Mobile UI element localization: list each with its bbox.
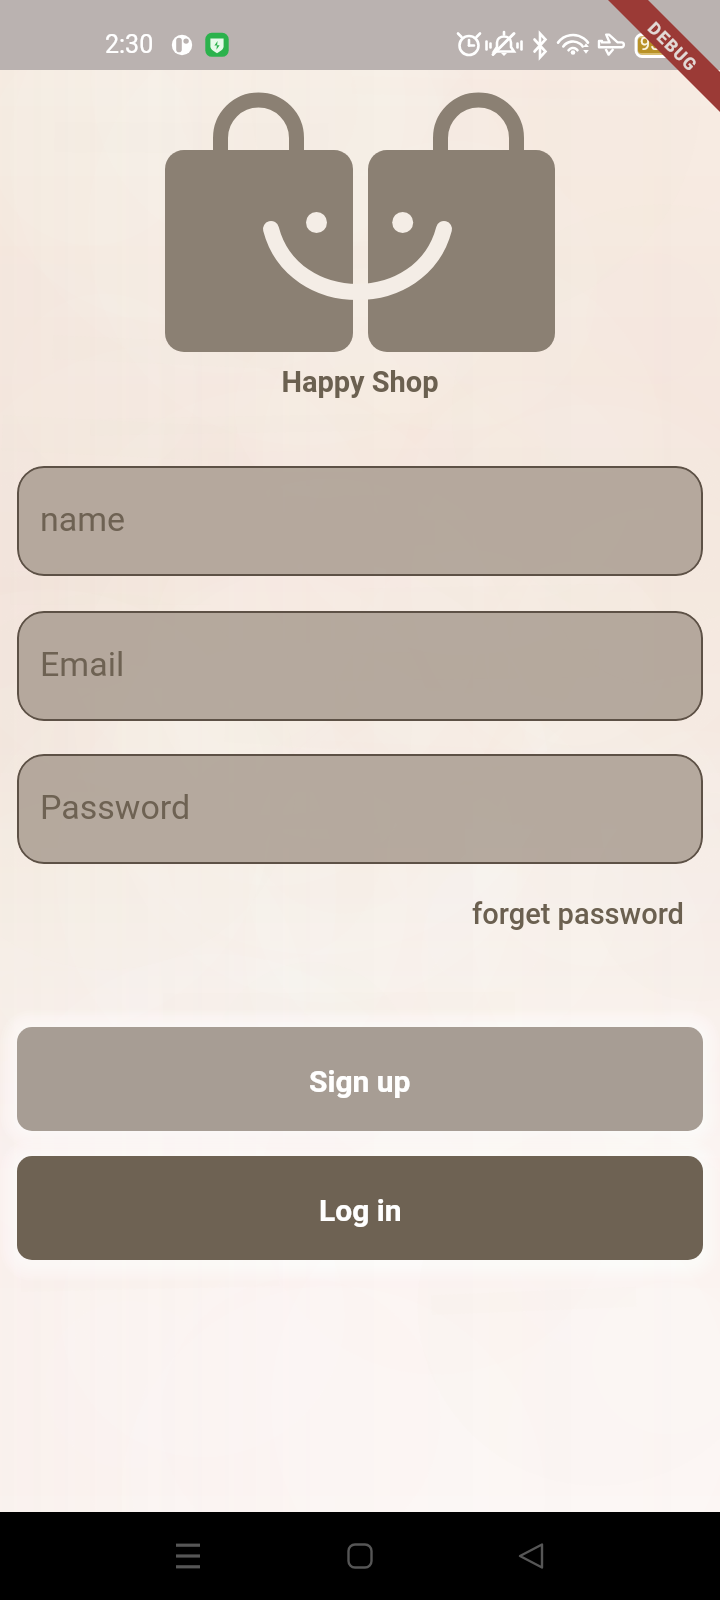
staticText: 2:30 xyxy=(105,30,154,59)
button[interactable]: Back xyxy=(491,1516,571,1596)
staticText: Sign up xyxy=(309,1064,411,1099)
button[interactable]: Recent apps xyxy=(148,1516,228,1596)
button[interactable]: Log in xyxy=(17,1156,703,1260)
button[interactable]: Home xyxy=(320,1516,400,1596)
staticText: 95 xyxy=(640,33,661,54)
button[interactable]: forget password xyxy=(468,893,688,935)
staticText: forget password xyxy=(472,897,684,931)
staticText: Happy Shop xyxy=(0,365,720,399)
button[interactable]: Sign up xyxy=(17,1027,703,1131)
staticText: Log in xyxy=(319,1193,402,1228)
staticText: Password xyxy=(40,787,191,827)
button[interactable]: Password xyxy=(17,754,703,864)
button[interactable]: Email xyxy=(17,611,703,721)
staticText: Email xyxy=(40,644,125,684)
staticText: DEBUG xyxy=(644,18,702,76)
staticText: name xyxy=(40,499,126,539)
button[interactable]: name xyxy=(17,466,703,576)
